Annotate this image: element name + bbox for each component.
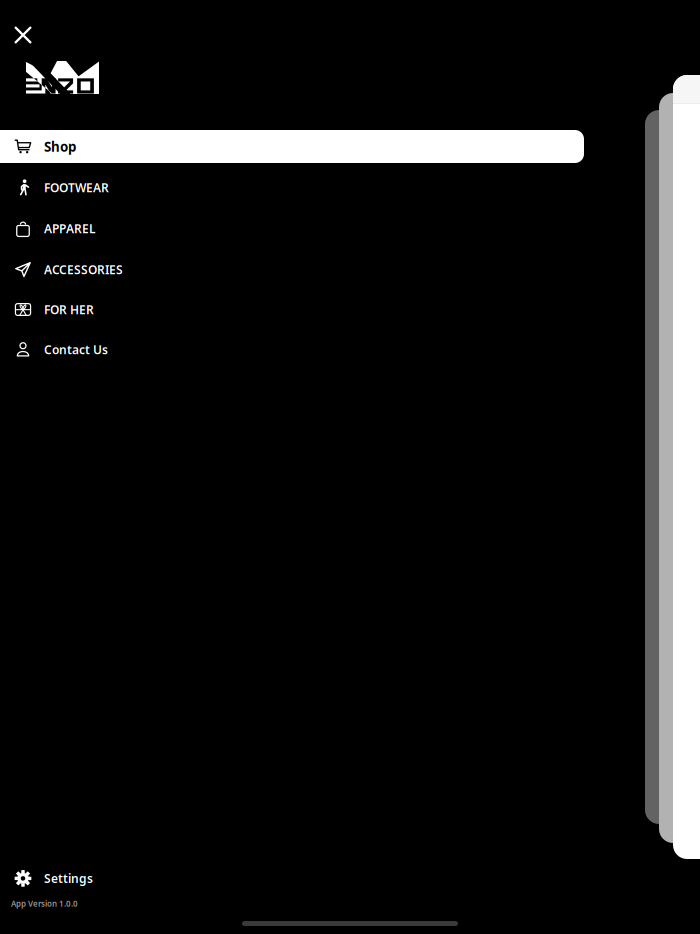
button[interactable]: Settings: [0, 863, 260, 893]
staticText: App Version 1.0.0: [11, 898, 78, 909]
button[interactable]: APPAREL: [0, 212, 584, 245]
staticText: ACCESSORIES: [44, 261, 123, 277]
button[interactable]: FOR HER: [0, 293, 584, 326]
button[interactable]: Shop: [0, 130, 584, 163]
staticText: Contact Us: [44, 341, 108, 357]
button[interactable]: ACCESSORIES: [0, 253, 584, 286]
staticText: FOOTWEAR: [44, 179, 109, 195]
button[interactable]: Close menu: [1, 13, 45, 57]
staticText: APPAREL: [44, 220, 96, 236]
staticText: Shop: [44, 138, 76, 155]
button[interactable]: Contact Us: [0, 333, 584, 366]
staticText: FOR HER: [44, 301, 94, 317]
staticText: Settings: [44, 870, 93, 886]
button[interactable]: FOOTWEAR: [0, 171, 584, 204]
